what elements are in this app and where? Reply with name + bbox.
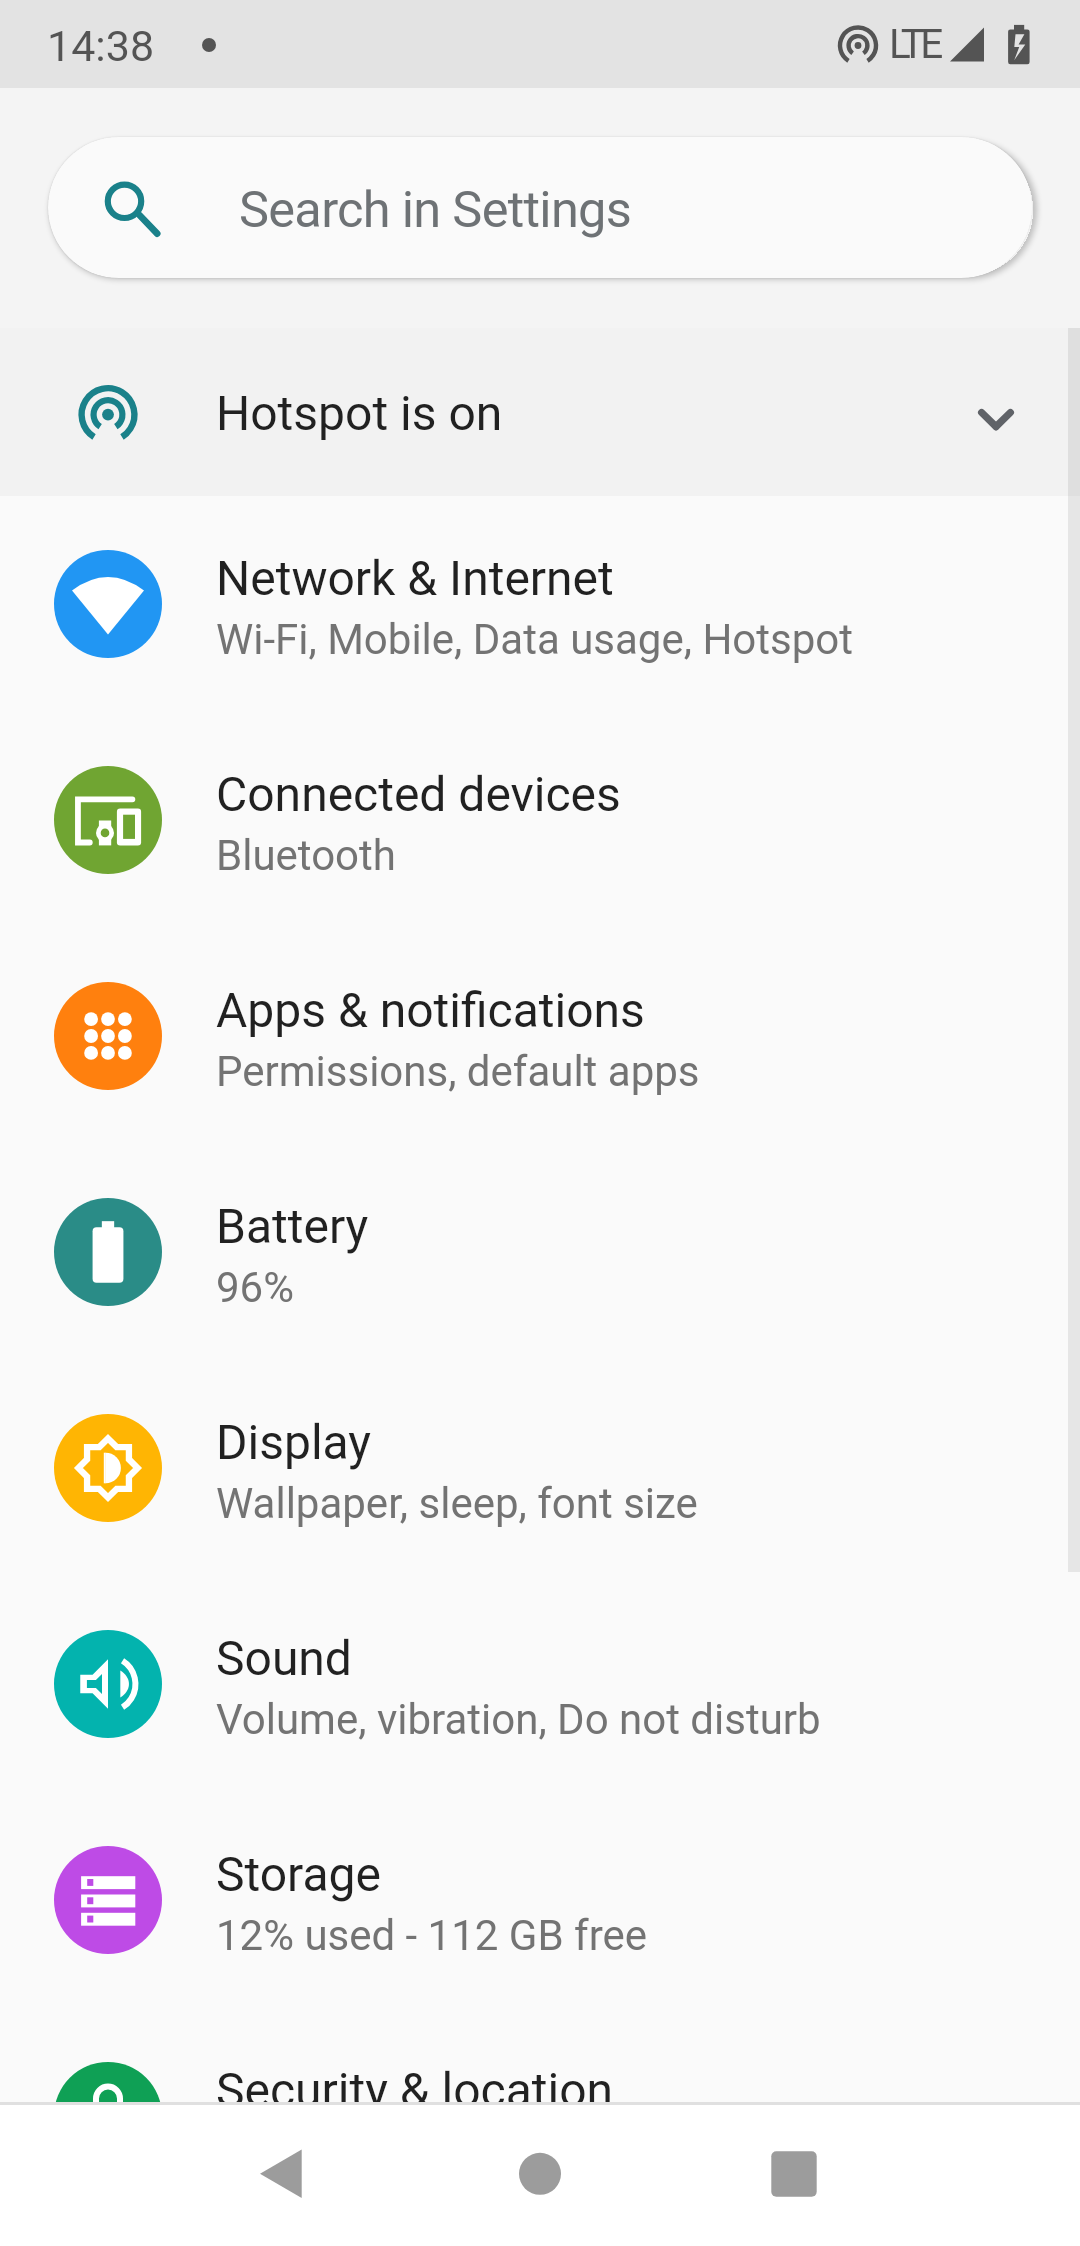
staticText: Security & location — [216, 2062, 614, 2118]
staticText: 96% — [216, 1263, 294, 1312]
staticText: Permissions, default apps — [216, 1047, 700, 1096]
staticText: Display — [216, 1414, 372, 1470]
button[interactable]: Sound — [0, 1576, 1080, 1792]
staticText: Network & Internet — [216, 550, 614, 606]
button[interactable]: Security & location — [0, 2008, 1080, 2224]
button[interactable]: Home — [440, 2105, 640, 2246]
staticText: Bluetooth — [216, 831, 396, 880]
staticText: Sound — [216, 1630, 352, 1686]
button[interactable]: Hotspot is on — [0, 328, 1080, 496]
button[interactable]: Battery — [0, 1144, 1080, 1360]
button[interactable]: Back — [181, 2105, 381, 2246]
staticText: 14:38 — [47, 21, 155, 71]
staticText: Wallpaper, sleep, font size — [216, 1479, 698, 1528]
button[interactable]: Storage — [0, 1792, 1080, 2008]
button[interactable]: Apps & notifications — [0, 928, 1080, 1144]
button[interactable]: Display — [0, 1360, 1080, 1576]
staticText: Battery — [216, 1198, 369, 1254]
button[interactable]: Search in Settings — [48, 137, 1032, 278]
staticText: Hotspot is on — [216, 385, 503, 441]
button[interactable]: Recents — [694, 2105, 894, 2246]
button[interactable]: Connected devices — [0, 712, 1080, 928]
button[interactable]: Network & Internet — [0, 496, 1080, 712]
staticText: Connected devices — [216, 766, 621, 822]
staticText: Search in Settings — [239, 180, 632, 239]
staticText: Volume, vibration, Do not disturb — [216, 1695, 821, 1744]
staticText: Storage — [216, 1846, 381, 1902]
button[interactable]: Expand — [941, 360, 1051, 470]
staticText: 12% used - 112 GB free — [216, 1911, 648, 1960]
staticText: Wi-Fi, Mobile, Data usage, Hotspot — [216, 615, 854, 664]
staticText: LTE — [889, 20, 939, 67]
staticText: Apps & notifications — [216, 982, 645, 1038]
